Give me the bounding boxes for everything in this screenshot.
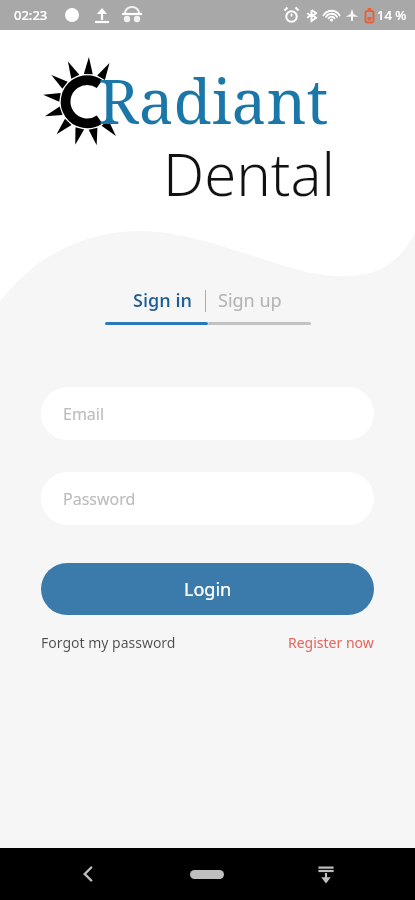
button[interactable]: Email: [41, 387, 374, 440]
button[interactable]: Sign in: [123, 286, 203, 315]
button[interactable]: Hide keyboard: [302, 850, 350, 898]
staticText: Email: [63, 403, 105, 425]
button[interactable]: Forgot my password: [41, 629, 176, 656]
staticText: Password: [63, 488, 136, 510]
staticText: Forgot my password: [41, 633, 176, 652]
staticText: Sign in: [133, 288, 193, 313]
button[interactable]: Register now: [288, 629, 374, 656]
button[interactable]: Sign up: [208, 286, 292, 315]
staticText: Dental: [163, 134, 336, 213]
button[interactable]: Password: [41, 472, 374, 525]
staticText: Radiant: [98, 58, 329, 142]
button[interactable]: Home: [177, 850, 237, 898]
button[interactable]: Login: [41, 563, 374, 615]
staticText: 02:23: [14, 6, 48, 24]
button[interactable]: Back: [64, 850, 112, 898]
staticText: 14 %: [377, 6, 407, 24]
staticText: Register now: [288, 633, 374, 652]
staticText: Login: [184, 577, 232, 602]
staticText: Sign up: [218, 288, 282, 313]
